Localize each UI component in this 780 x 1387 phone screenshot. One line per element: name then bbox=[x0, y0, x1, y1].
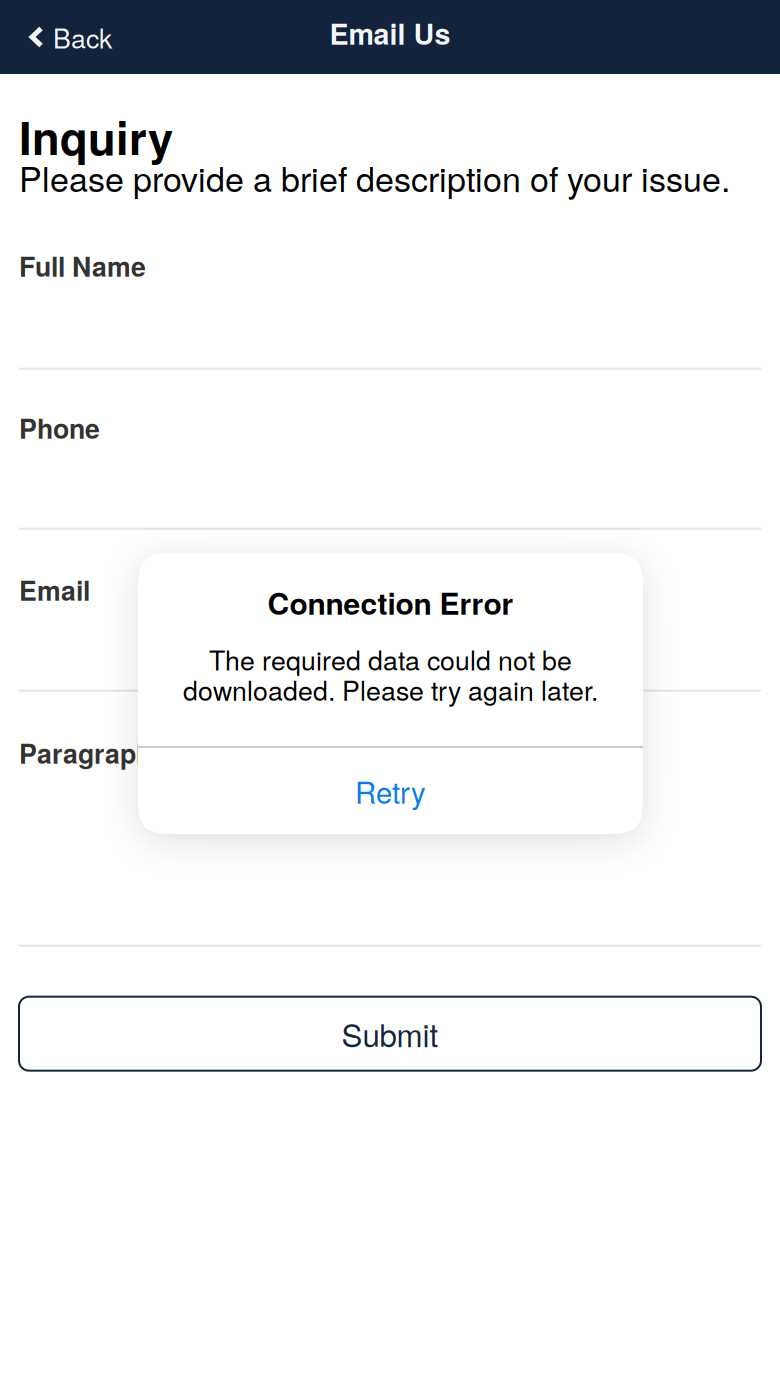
staticText: Back bbox=[53, 18, 112, 56]
staticText: The required data could not be bbox=[209, 640, 572, 678]
button[interactable]: Submit bbox=[19, 997, 761, 1071]
staticText: Connection Error bbox=[267, 581, 513, 624]
button[interactable]: Back bbox=[0, 0, 136, 74]
staticText: Retry bbox=[355, 770, 426, 812]
button[interactable]: Paragraph bbox=[19, 692, 761, 947]
staticText: Paragraph bbox=[19, 734, 152, 772]
button[interactable]: Phone bbox=[19, 370, 761, 530]
button[interactable]: Email bbox=[19, 530, 761, 692]
button[interactable]: Retry bbox=[138, 748, 643, 834]
staticText: Email Us bbox=[329, 12, 450, 54]
staticText: downloaded. Please try again later. bbox=[183, 670, 598, 708]
button[interactable]: Full Name bbox=[19, 202, 761, 370]
staticText: Phone bbox=[19, 409, 100, 447]
staticText: Email bbox=[19, 571, 90, 609]
staticText: Please provide a brief description of yo… bbox=[19, 153, 730, 202]
staticText: Full Name bbox=[19, 247, 146, 285]
staticText: Submit bbox=[341, 1011, 438, 1056]
staticText: Inquiry bbox=[19, 104, 173, 169]
